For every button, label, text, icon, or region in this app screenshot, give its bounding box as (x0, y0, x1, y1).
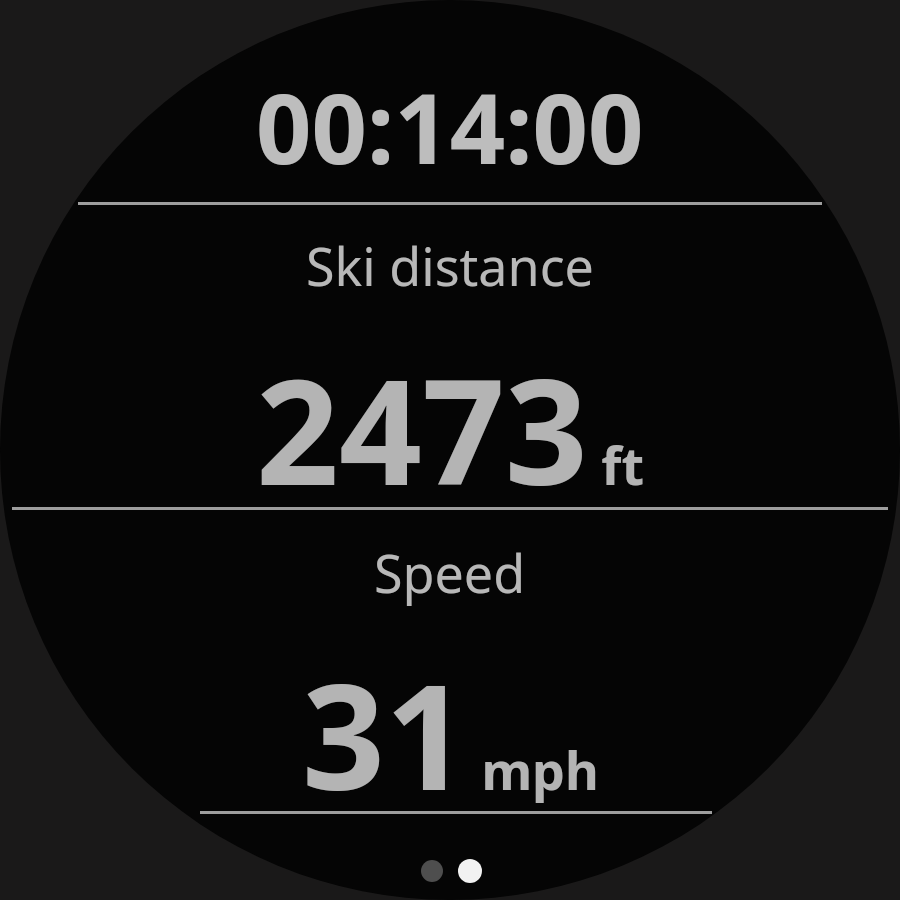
staticText: Speed (374, 537, 526, 608)
staticText: 00:14:00 (256, 60, 644, 192)
staticText: Ski distance (306, 230, 594, 301)
other: Page 2 of 2 (0, 0, 900, 900)
button[interactable]: 00:14:00 (0, 0, 900, 900)
staticText: 2473 ft (256, 330, 644, 527)
button[interactable]: Ski distance (0, 0, 900, 900)
staticText: 31 mph (302, 635, 599, 832)
button[interactable]: Speed (0, 0, 900, 900)
